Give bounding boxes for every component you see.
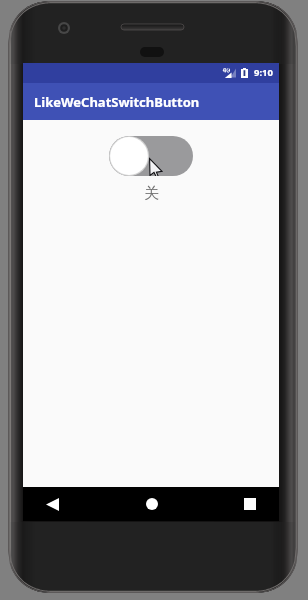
staticText: LikeWeChatSwitchButton (34, 93, 200, 111)
staticText: 关 (144, 184, 159, 203)
button[interactable]: Back (23, 487, 109, 521)
button[interactable]: Home (109, 487, 194, 521)
staticText: 9:10 (254, 66, 273, 79)
button[interactable]: Recents (194, 487, 279, 521)
button[interactable]: WeChat style switch, off (109, 136, 193, 176)
